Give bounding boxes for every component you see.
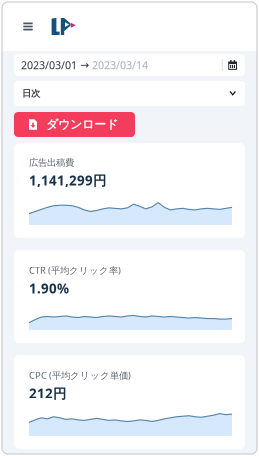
staticText: 2023/03/14 — [92, 58, 148, 72]
staticText: 212円 — [29, 384, 66, 402]
staticText: 日次 — [22, 88, 40, 99]
button[interactable]: 2023/03/01 — [14, 54, 245, 76]
staticText: 1.90% — [29, 279, 69, 297]
staticText: CPC (平均クリック単価) — [29, 369, 131, 381]
staticText: 1,141,299円 — [29, 171, 106, 189]
button[interactable]: ダウンロード — [14, 112, 135, 137]
button[interactable]: Menu — [2, 17, 36, 35]
staticText: → — [80, 59, 89, 71]
button[interactable]: 日次 — [14, 81, 245, 106]
staticText: CTR (平均クリック率) — [29, 264, 121, 276]
staticText: ダウンロード — [46, 117, 118, 132]
staticText: 2023/03/01 — [21, 58, 77, 72]
button[interactable]: Home — [36, 18, 76, 35]
staticText: 広告出稿費 — [29, 157, 74, 168]
